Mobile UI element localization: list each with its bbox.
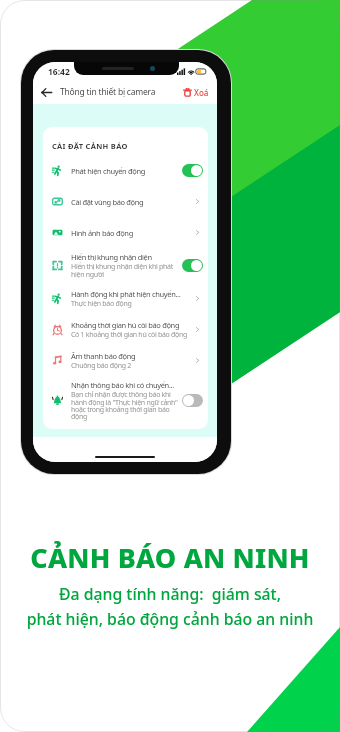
button[interactable]: Back	[39, 85, 54, 100]
button[interactable]: Cài đặt vùng báo động	[43, 186, 208, 217]
staticText: Bạn chỉ nhận được thông báo khi hành độn…	[71, 390, 179, 421]
other: Open	[192, 324, 203, 335]
staticText: Khoảng thời gian hú còi báo động	[71, 320, 180, 330]
staticText: CẢNH BÁO AN NINH	[0, 539, 340, 576]
staticText: Thông tin thiết bị camera	[60, 86, 156, 98]
staticText: Cài đặt vùng báo động	[71, 197, 144, 207]
button[interactable]: Toggle	[182, 164, 203, 177]
staticText: Hình ảnh báo động	[71, 228, 133, 238]
staticText: Phát hiện chuyển động	[71, 166, 145, 176]
staticText: Đa dạng tính năng: giám sát, phát hiện, …	[0, 583, 340, 629]
staticText: CÀI ĐẶT CẢNH BÁO	[52, 141, 128, 151]
staticText: Âm thanh báo động	[71, 351, 136, 361]
other: Open	[192, 227, 203, 238]
button[interactable]: Hành động khi phát hiện chuyển...	[43, 283, 208, 314]
button[interactable]: Âm thanh báo động	[43, 345, 208, 376]
staticText: Hiển thị khung nhận diện khi phát hiện n…	[71, 262, 179, 279]
button[interactable]: Xoá	[181, 84, 211, 101]
other: Open	[192, 355, 203, 366]
button[interactable]: Toggle	[182, 394, 203, 407]
staticText: Nhận thông báo khi có chuyển...	[71, 380, 174, 390]
button[interactable]: Khoảng thời gian hú còi báo động	[43, 314, 208, 345]
staticText: Chuông báo động 2	[71, 361, 131, 371]
staticText: Có 1 khoảng thời gian hú còi báo động	[71, 330, 188, 340]
staticText: 16:42	[48, 66, 70, 78]
staticText: Xoá	[194, 87, 209, 98]
button[interactable]: Hiển thị khung nhận diện	[43, 248, 208, 283]
staticText: Thực hiện báo động	[71, 299, 132, 309]
staticText: Hành động khi phát hiện chuyển...	[71, 289, 181, 299]
button[interactable]: Hình ảnh báo động	[43, 217, 208, 248]
staticText: Hiển thị khung nhận diện	[71, 252, 152, 262]
other: Open	[192, 293, 203, 304]
button[interactable]: Nhận thông báo khi có chuyển...	[43, 376, 208, 425]
button[interactable]: Phát hiện chuyển động	[43, 155, 208, 186]
button[interactable]: Toggle	[182, 259, 203, 272]
other: Open	[192, 196, 203, 207]
